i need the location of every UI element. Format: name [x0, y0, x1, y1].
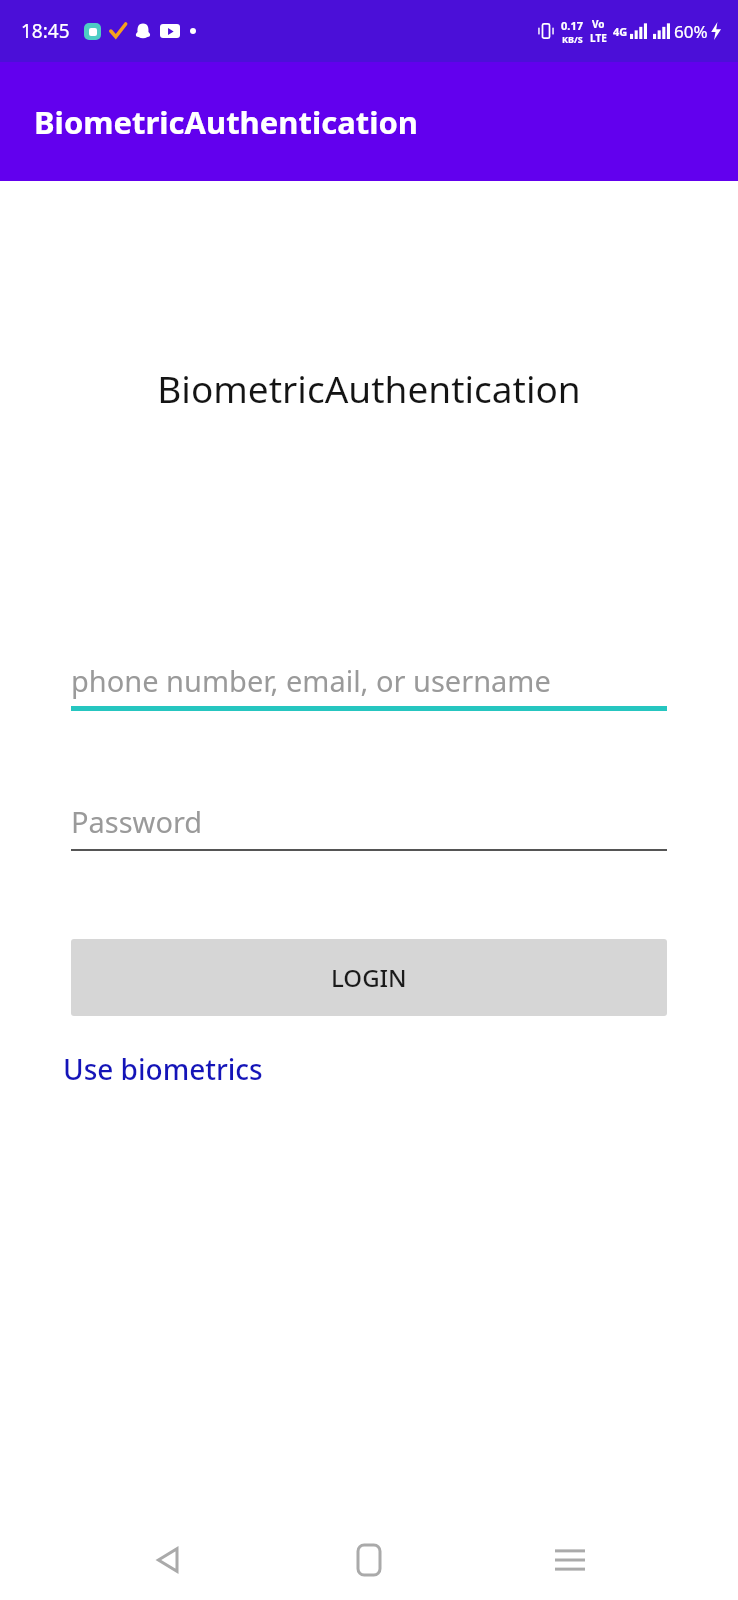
button[interactable]: Password: [71, 802, 667, 851]
button[interactable]: phone number, email, or username: [71, 661, 667, 711]
button[interactable]: Recent apps: [542, 1532, 598, 1588]
staticText: LTE: [590, 31, 607, 45]
staticText: 0.17: [561, 18, 583, 33]
staticText: 4G: [613, 24, 628, 39]
staticText: BiometricAuthentication: [34, 101, 418, 143]
staticText: Use biometrics: [63, 1050, 263, 1088]
staticText: Password: [71, 802, 203, 841]
staticText: KB/S: [562, 33, 583, 45]
button[interactable]: Home: [341, 1532, 397, 1588]
staticText: Vo: [592, 17, 605, 31]
button[interactable]: LOGIN: [71, 939, 667, 1016]
staticText: BiometricAuthentication: [0, 363, 738, 413]
staticText: LOGIN: [331, 961, 407, 994]
staticText: 60%: [674, 20, 708, 43]
button[interactable]: Use biometrics: [63, 1050, 263, 1088]
button[interactable]: Back: [140, 1532, 196, 1588]
staticText: phone number, email, or username: [71, 661, 551, 700]
staticText: 18:45: [21, 18, 70, 44]
